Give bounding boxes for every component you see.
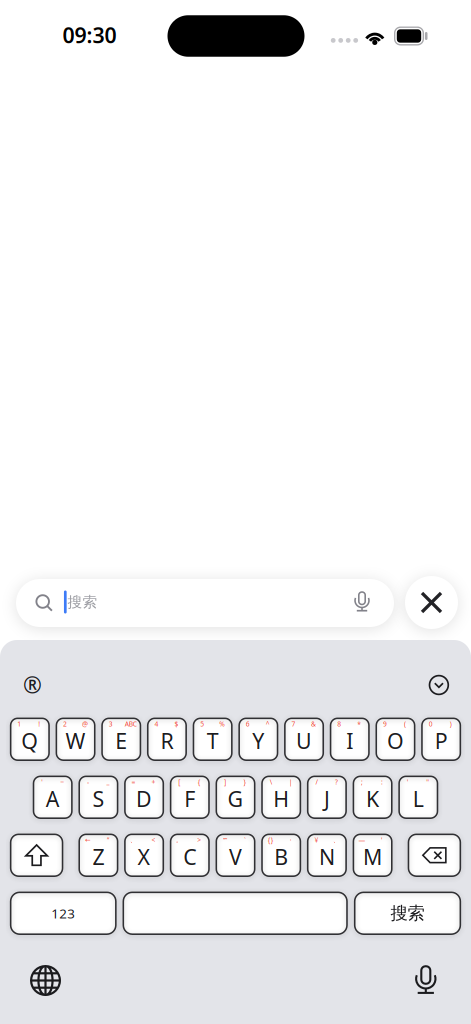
staticText: / [315, 778, 317, 786]
staticText: % [219, 720, 225, 728]
button[interactable]: B [261, 833, 301, 877]
staticText: ¥ [314, 836, 318, 844]
staticText: $ [174, 720, 178, 728]
staticText: : [381, 778, 383, 786]
staticText: 5 [200, 720, 204, 728]
button[interactable]: J [307, 775, 347, 819]
button[interactable]: Input method [19, 671, 45, 697]
staticText: A [46, 785, 60, 813]
staticText: · [290, 836, 292, 844]
button[interactable]: N [307, 833, 347, 877]
staticText: J [324, 785, 330, 813]
button[interactable]: T [193, 717, 233, 761]
button[interactable]: S [78, 775, 118, 819]
staticText: R [160, 727, 173, 755]
staticText: ← [85, 836, 91, 844]
button[interactable]: Next keyboard [28, 963, 62, 997]
staticText: = [132, 778, 136, 786]
button[interactable]: D [124, 775, 164, 819]
button[interactable]: Delete [408, 833, 461, 877]
button[interactable]: P [421, 717, 461, 761]
staticText: ; [361, 778, 363, 786]
staticText: 123 [51, 904, 75, 922]
staticText: ~ [60, 778, 64, 786]
staticText: — [359, 836, 366, 844]
staticText: * [357, 720, 361, 728]
staticText: ` [244, 836, 246, 844]
button[interactable]: Voice search [351, 588, 373, 614]
staticText: { [198, 778, 201, 786]
staticText: ABC [125, 720, 137, 728]
button[interactable]: W [56, 717, 96, 761]
button[interactable]: U [284, 717, 324, 761]
staticText: ( [404, 720, 406, 728]
button[interactable]: O [375, 717, 415, 761]
staticText: T [207, 727, 219, 755]
button[interactable]: G [215, 775, 255, 819]
staticText: V [229, 843, 242, 871]
staticText: _ [106, 778, 109, 786]
staticText: M [363, 843, 382, 871]
staticText: L [413, 785, 424, 813]
button[interactable]: H [261, 775, 301, 819]
button[interactable]: V [215, 833, 255, 877]
staticText: 搜索 [67, 593, 97, 611]
button[interactable]: Y [238, 717, 278, 761]
staticText: ! [38, 720, 40, 728]
staticText: ) [450, 720, 452, 728]
button[interactable]: X [124, 833, 164, 877]
button[interactable]: Z [78, 833, 118, 877]
staticText: " [426, 778, 429, 786]
staticText: X [138, 843, 151, 871]
staticText: | [289, 778, 293, 786]
staticText: “” [223, 836, 227, 844]
staticText: W [66, 727, 86, 755]
staticText: D [136, 785, 152, 813]
button[interactable]: Space [122, 891, 348, 935]
button[interactable]: Q [10, 717, 50, 761]
button[interactable]: L [398, 775, 438, 819]
button[interactable]: 搜索 [354, 891, 461, 935]
staticText: 。 [176, 836, 183, 844]
button[interactable]: 搜索 [16, 579, 394, 627]
staticText: > [197, 836, 201, 844]
button[interactable]: R [147, 717, 187, 761]
staticText: [ [178, 778, 180, 786]
button[interactable]: F [170, 775, 210, 819]
staticText: 6 [246, 720, 250, 728]
button[interactable]: E [101, 717, 141, 761]
staticText: 、 [130, 836, 137, 844]
staticText: + [152, 778, 156, 786]
button[interactable]: Dictation [409, 959, 443, 997]
staticText: 2 [63, 720, 67, 728]
button[interactable]: M [353, 833, 393, 877]
staticText: ' [41, 778, 43, 786]
staticText: H [273, 785, 289, 813]
staticText: ] [224, 778, 226, 786]
staticText: \ [270, 778, 272, 786]
staticText: 、 [333, 836, 340, 844]
button[interactable]: C [170, 833, 210, 877]
staticText: C [183, 843, 196, 871]
button[interactable]: Close [405, 576, 458, 629]
staticText: P [435, 727, 448, 755]
staticText: O [387, 727, 404, 755]
button[interactable]: Shift [10, 833, 63, 877]
staticText: Z [92, 843, 104, 871]
staticText: ' [381, 836, 383, 844]
staticText: - [87, 778, 89, 786]
staticText: I [346, 727, 353, 755]
button[interactable]: I [330, 717, 370, 761]
staticText: ^ [266, 720, 270, 728]
button[interactable]: 123 [10, 891, 117, 935]
staticText: } [243, 778, 246, 786]
staticText: & [311, 720, 316, 728]
button[interactable]: K [353, 775, 393, 819]
staticText: < [152, 836, 156, 844]
staticText: ' [407, 778, 409, 786]
button[interactable]: Dismiss keyboard [428, 674, 450, 696]
staticText: ? [335, 778, 338, 786]
button[interactable]: A [33, 775, 73, 819]
staticText: 09:30 [62, 21, 116, 49]
staticText: F [184, 785, 195, 813]
